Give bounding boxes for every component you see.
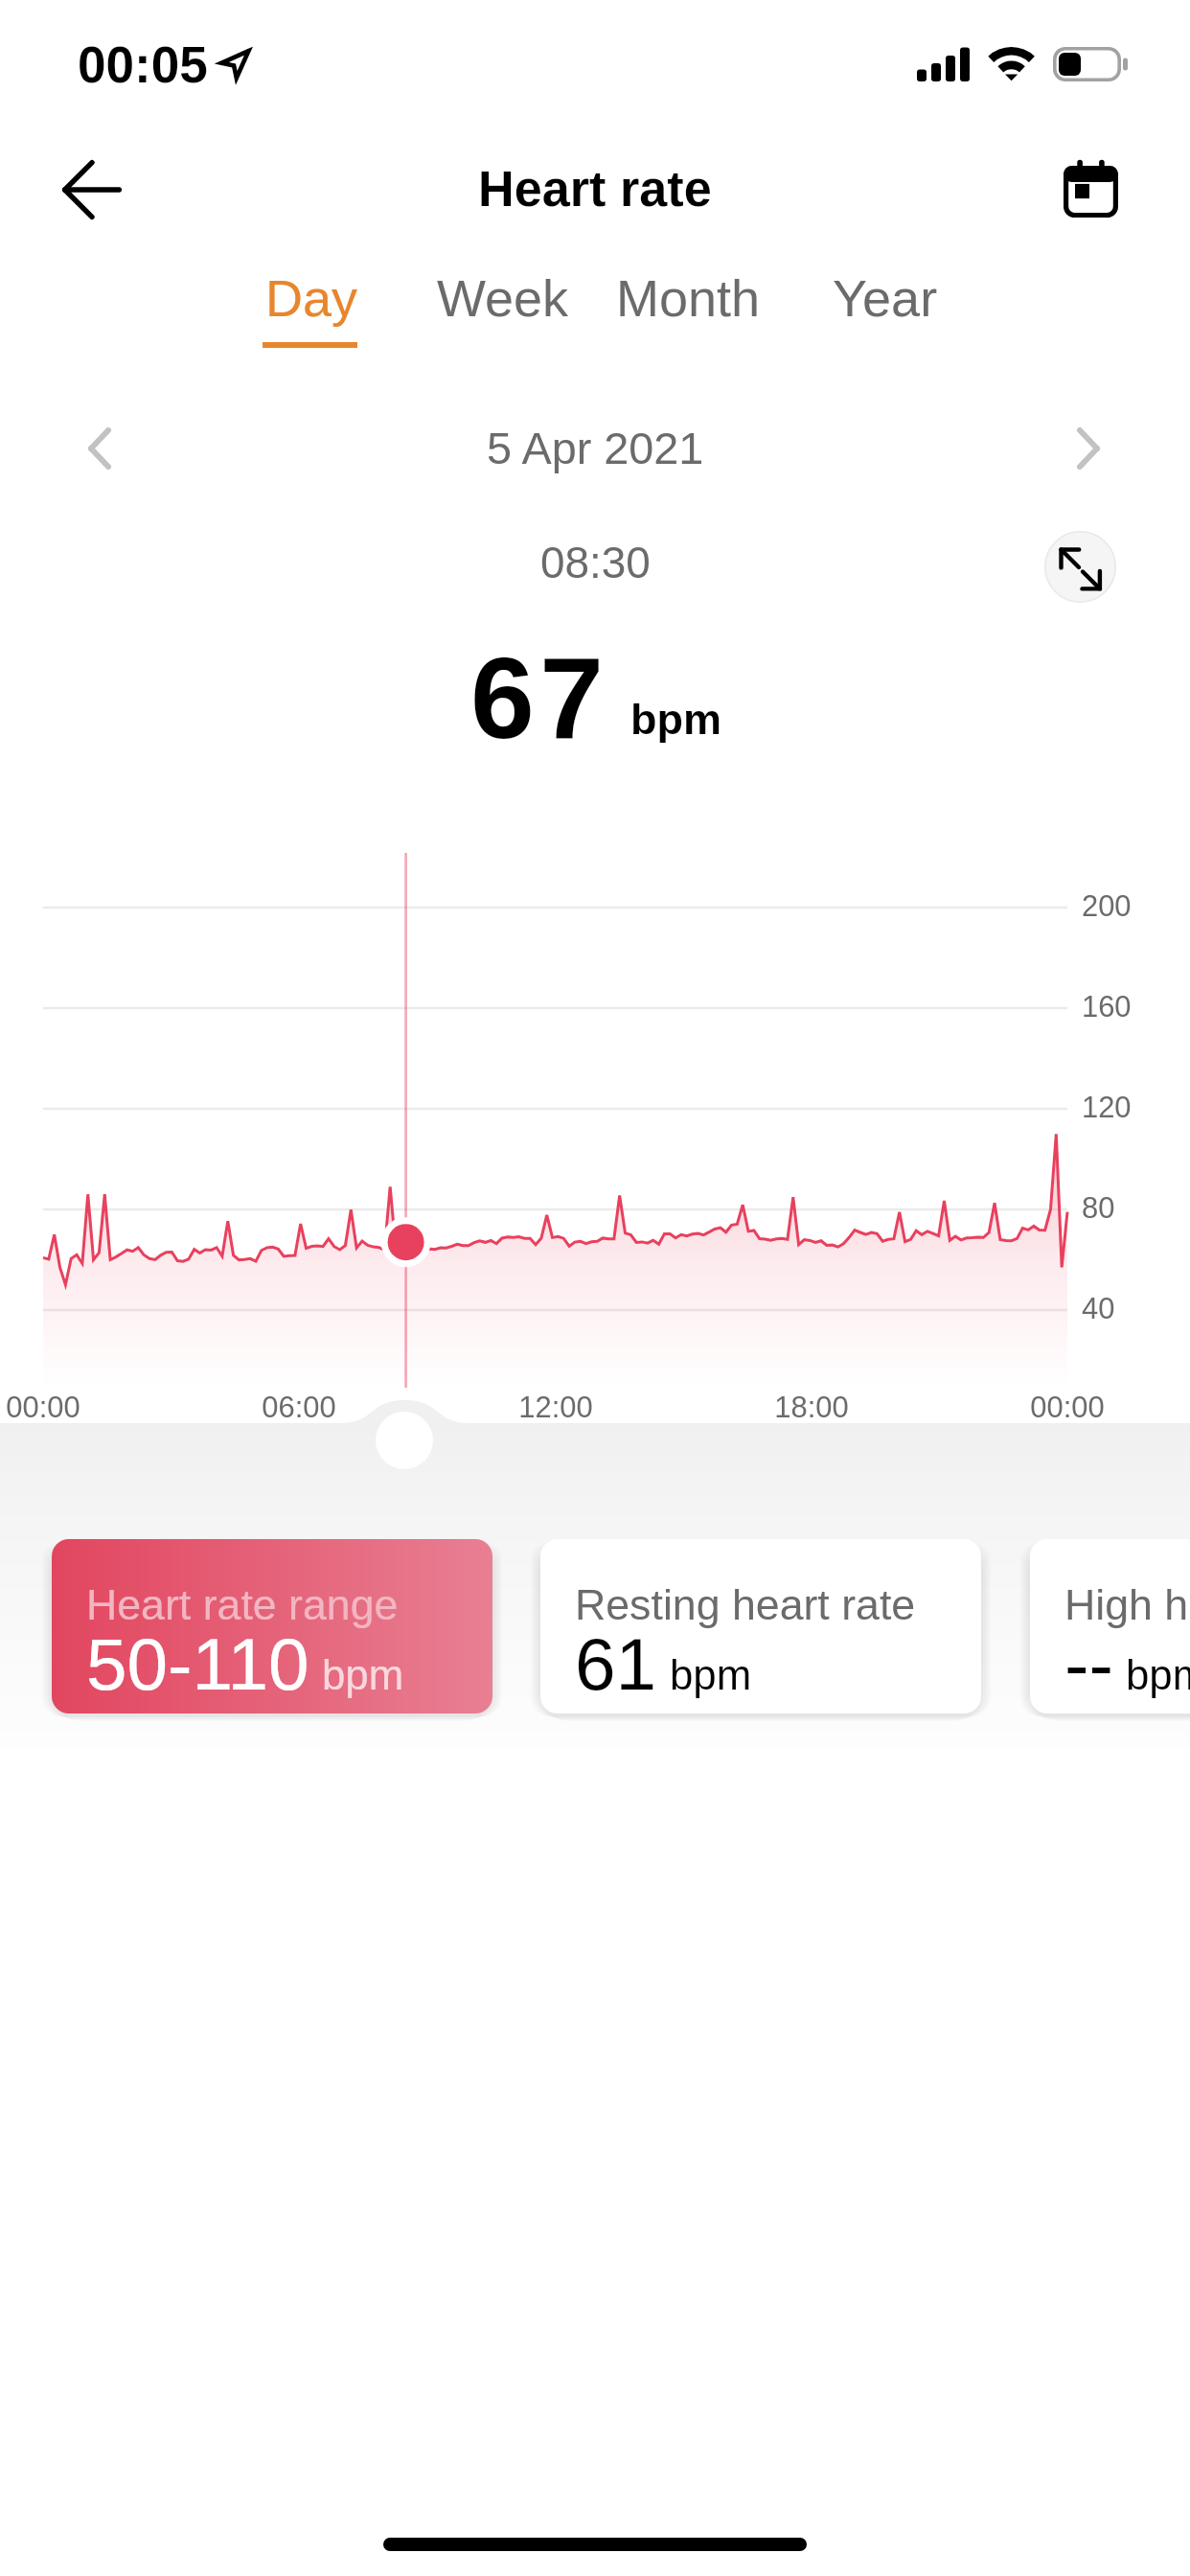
staticText: Heart rate (478, 161, 712, 217)
button[interactable]: Year (812, 261, 951, 355)
staticText: 67 (470, 633, 609, 762)
staticText: 00:00 (0, 1391, 101, 1424)
button[interactable]: Expand chart (1044, 531, 1116, 603)
staticText: bpm (670, 1651, 752, 1698)
staticText: -- (1064, 1623, 1113, 1705)
staticText: 40 (1082, 1292, 1115, 1325)
button[interactable]: Back (33, 148, 159, 232)
staticText: 06:00 (241, 1391, 356, 1424)
staticText: Month (616, 269, 761, 327)
staticText: bpm (322, 1651, 404, 1698)
button[interactable]: Week (416, 261, 587, 355)
staticText: 5 Apr 2021 (487, 424, 704, 473)
staticText: bpm (630, 695, 721, 743)
button[interactable]: High heart rate (1030, 1539, 1190, 1713)
staticText: 00:05 (78, 36, 208, 93)
staticText: 08:30 (540, 538, 651, 586)
staticText: Heart rate range (86, 1581, 399, 1629)
button[interactable]: Previous day (52, 392, 148, 503)
button[interactable]: Heart rate range (52, 1539, 492, 1713)
button[interactable]: Resting heart rate (540, 1539, 981, 1713)
staticText: 18:00 (754, 1391, 869, 1424)
button[interactable]: Month (595, 261, 778, 355)
staticText: Day (265, 269, 358, 327)
button[interactable]: Day (244, 261, 375, 355)
staticText: 200 (1082, 889, 1132, 923)
staticText: 12:00 (498, 1391, 613, 1424)
staticText: Week (437, 269, 569, 327)
staticText: Resting heart rate (575, 1581, 916, 1629)
button[interactable]: Calendar (1048, 144, 1136, 234)
staticText: 50-110 (86, 1623, 309, 1705)
staticText: 00:00 (1010, 1391, 1125, 1424)
staticText: 80 (1082, 1191, 1115, 1225)
staticText: Year (833, 269, 938, 327)
staticText: High heart rate (1064, 1581, 1190, 1629)
staticText: 160 (1082, 990, 1132, 1023)
staticText: bpm (1126, 1651, 1190, 1698)
staticText: 120 (1082, 1091, 1132, 1124)
staticText: 61 (575, 1623, 657, 1705)
button[interactable]: Next day (1042, 392, 1138, 503)
